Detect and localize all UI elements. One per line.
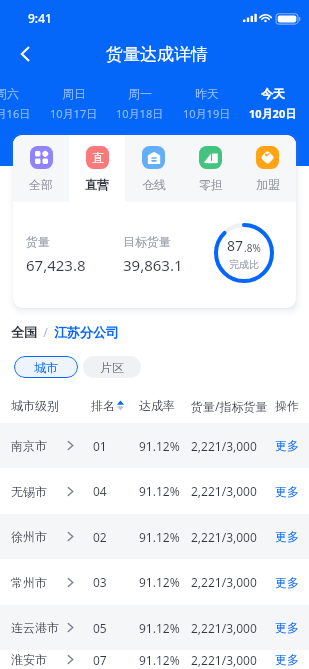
button[interactable]: 江苏分公司 — [54, 324, 119, 340]
button[interactable]: 城市 — [14, 356, 78, 378]
staticText: 连云港市 — [11, 620, 59, 635]
button[interactable]: 片区 — [83, 356, 141, 378]
staticText: 周六 — [0, 86, 19, 101]
staticText: 91.12% — [139, 438, 180, 454]
staticText: 2,221/3,000 — [191, 574, 257, 590]
staticText: 10月20日 — [249, 106, 297, 121]
staticText: 货量 — [26, 234, 50, 249]
staticText: 91.12% — [139, 529, 180, 545]
staticText: 仓线 — [142, 177, 166, 192]
staticText: .8% — [244, 241, 261, 255]
staticText: 全部 — [29, 177, 53, 192]
button[interactable]: 徐州市 — [0, 514, 309, 559]
staticText: 87 — [227, 236, 244, 255]
staticText: 徐州市 — [11, 529, 47, 544]
staticText: 目标货量 — [123, 234, 171, 249]
staticText: 2,221/3,000 — [191, 652, 257, 668]
staticText: 排名 — [91, 398, 115, 413]
button[interactable]: 更多 — [275, 575, 299, 590]
button[interactable]: 更多 — [275, 484, 299, 499]
staticText: 2,221/3,000 — [191, 620, 257, 636]
staticText: 10月17日 — [50, 106, 98, 121]
staticText: 货量/指标货量 — [191, 398, 268, 414]
staticText: 2,221/3,000 — [191, 438, 257, 454]
button[interactable]: 昨天 — [174, 86, 240, 121]
staticText: 周一 — [128, 86, 152, 101]
staticText: 南京市 — [11, 438, 47, 453]
staticText: 9:41 — [28, 10, 52, 26]
staticText: 07 — [93, 652, 107, 668]
staticText: 01 — [93, 438, 107, 454]
staticText: 2,221/3,000 — [191, 529, 257, 545]
button[interactable]: 周六 — [0, 86, 40, 121]
button[interactable]: 更多 — [275, 620, 299, 635]
button[interactable]: 更多 — [275, 438, 299, 453]
button[interactable]: 淮安市 — [0, 650, 309, 669]
staticText: 67,423.8 — [26, 255, 86, 275]
button[interactable]: Back — [9, 38, 41, 70]
button[interactable]: 加盟 — [239, 135, 296, 202]
staticText: / — [37, 324, 54, 340]
staticText: 04 — [93, 483, 107, 499]
staticText: 03 — [93, 574, 107, 590]
staticText: 片区 — [100, 360, 124, 375]
staticText: 91.12% — [139, 652, 180, 668]
staticText: 零担 — [199, 177, 223, 192]
button[interactable]: 无锡市 — [0, 468, 309, 514]
button[interactable]: 今天 — [240, 86, 306, 121]
staticText: 淮安市 — [11, 652, 47, 667]
staticText: 05 — [93, 620, 107, 636]
staticText: 直 — [92, 150, 104, 165]
staticText: 91.12% — [139, 483, 180, 499]
button[interactable]: 连云港市 — [0, 605, 309, 650]
staticText: 10月19日 — [183, 106, 231, 121]
staticText: 无锡市 — [11, 484, 47, 499]
staticText: 10月18日 — [116, 106, 164, 121]
staticText: 02 — [93, 529, 107, 545]
staticText: 货量达成详情 — [106, 44, 208, 65]
staticText: 周日 — [62, 86, 86, 101]
staticText: 达成率 — [139, 398, 175, 413]
staticText: 今天 — [261, 86, 285, 101]
staticText: 城市 — [34, 360, 58, 375]
button[interactable]: 零担 — [182, 135, 239, 202]
staticText: 10月16日 — [0, 106, 31, 121]
button[interactable]: 常州市 — [0, 559, 309, 605]
button[interactable]: 全部 — [13, 135, 69, 202]
staticText: 直营 — [85, 177, 109, 192]
staticText: 昨天 — [195, 86, 219, 101]
staticText: 完成比 — [229, 258, 259, 271]
staticText: 操作 — [275, 398, 299, 413]
button[interactable]: 南京市 — [0, 423, 309, 468]
button[interactable]: 直 — [69, 135, 125, 202]
button[interactable]: 周日 — [41, 86, 107, 121]
staticText: 39,863.1 — [123, 255, 183, 275]
button[interactable]: 更多 — [275, 652, 299, 667]
button[interactable]: 周一 — [107, 86, 173, 121]
button[interactable]: 仓线 — [125, 135, 182, 202]
staticText: 常州市 — [11, 575, 47, 590]
staticText: 加盟 — [256, 177, 280, 192]
staticText: 91.12% — [139, 620, 180, 636]
button[interactable]: 全国 — [11, 324, 37, 340]
button[interactable]: 更多 — [275, 529, 299, 544]
staticText: 2,221/3,000 — [191, 483, 257, 499]
staticText: 91.12% — [139, 574, 180, 590]
staticText: 城市级别 — [11, 398, 59, 413]
